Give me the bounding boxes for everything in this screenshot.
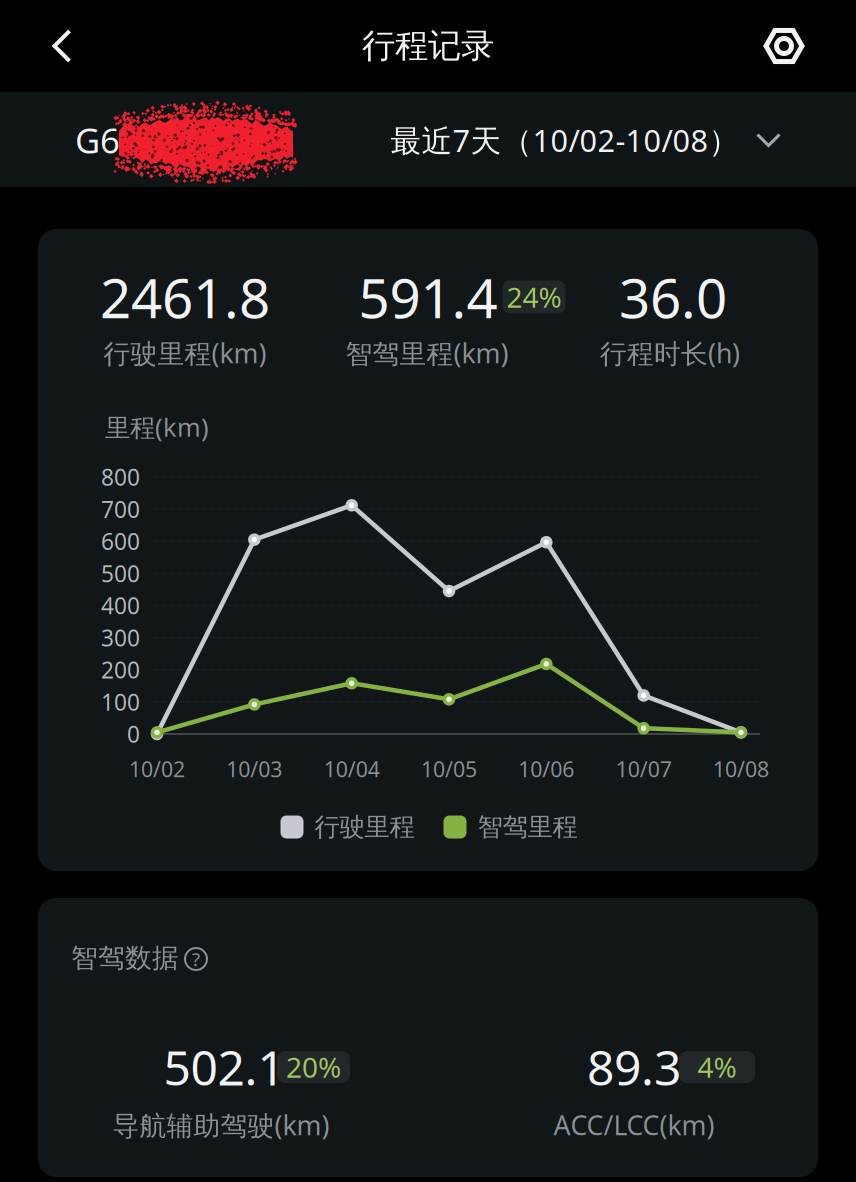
- staticText: 36.0: [619, 261, 727, 333]
- staticText: 2461.8: [100, 261, 270, 333]
- staticText: ACC/LCC(km): [553, 1107, 714, 1143]
- staticText: 591.4: [358, 261, 497, 333]
- staticText: 10/02: [129, 755, 185, 783]
- staticText: 500: [101, 558, 140, 588]
- staticText: 导航辅助驾驶(km): [112, 1107, 329, 1143]
- staticText: 行驶里程(km): [103, 335, 266, 371]
- button[interactable]: Settings: [729, 0, 839, 92]
- staticText: 行程记录: [362, 25, 494, 66]
- staticText: 89.3: [587, 1035, 681, 1099]
- staticText: 10/04: [324, 755, 380, 783]
- staticText: 0: [127, 719, 140, 749]
- staticText: 10/05: [421, 755, 477, 783]
- staticText: 10/03: [226, 755, 282, 783]
- staticText: 200: [101, 655, 140, 685]
- staticText: 智驾里程(km): [345, 335, 508, 371]
- staticText: 里程(km): [105, 410, 209, 444]
- staticText: 300: [101, 623, 140, 653]
- staticText: 100: [101, 687, 140, 717]
- staticText: G6: [75, 117, 120, 163]
- staticText: 700: [101, 494, 140, 524]
- staticText: 600: [101, 526, 140, 556]
- staticText: 智驾里程: [477, 811, 577, 842]
- staticText: 10/08: [713, 755, 769, 783]
- staticText: 24%: [506, 278, 561, 316]
- staticText: 10/06: [518, 755, 574, 783]
- staticText: 行程时长(h): [600, 335, 740, 371]
- button[interactable]: Back: [7, 0, 117, 92]
- button[interactable]: 最近7天（10/02-10/08）: [390, 120, 783, 160]
- staticText: 502.1: [163, 1035, 284, 1099]
- staticText: 智驾数据: [71, 942, 179, 974]
- staticText: ?: [192, 947, 200, 971]
- staticText: 4%: [697, 1048, 736, 1086]
- staticText: 800: [101, 462, 140, 492]
- staticText: 400: [101, 590, 140, 620]
- staticText: 20%: [286, 1048, 341, 1086]
- staticText: 行驶里程: [314, 811, 414, 842]
- staticText: 最近7天（10/02-10/08）: [390, 120, 739, 160]
- staticText: 10/07: [616, 755, 672, 783]
